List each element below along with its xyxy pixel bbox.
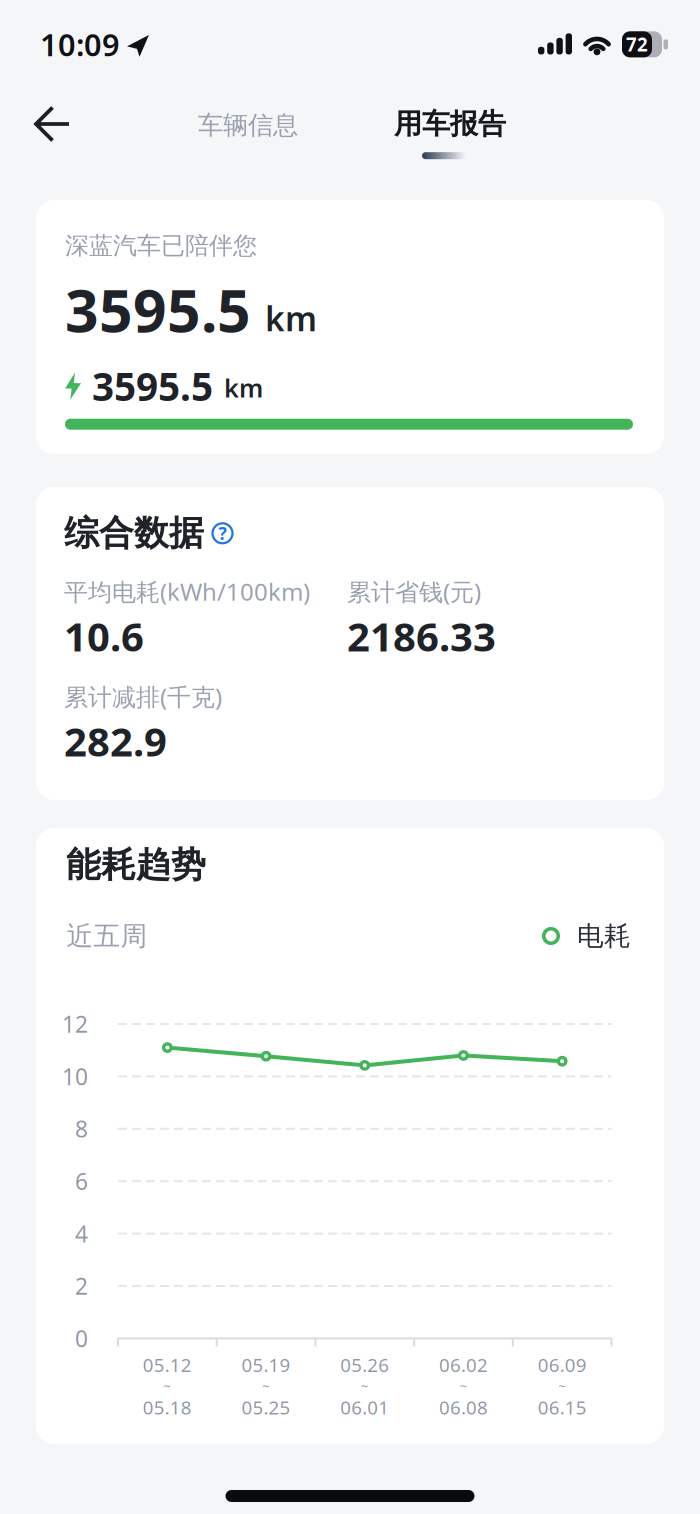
staticText: 10	[62, 1061, 88, 1091]
staticText: 近五周	[66, 920, 147, 952]
staticText: 深蓝汽车已陪伴您	[65, 231, 257, 260]
staticText: 72	[626, 32, 648, 57]
staticText: 8	[75, 1114, 88, 1144]
staticText: 282.9	[64, 714, 167, 767]
staticText: 6	[75, 1166, 88, 1196]
staticText: 累计省钱(元)	[347, 576, 481, 607]
button[interactable]: Back	[30, 102, 74, 146]
staticText: 3595.5	[65, 270, 251, 348]
staticText: ~	[163, 1377, 171, 1395]
staticText: 05.18	[143, 1395, 192, 1420]
staticText: 05.26	[340, 1352, 389, 1377]
staticText: 12	[62, 1009, 88, 1039]
staticText: 0	[75, 1323, 88, 1353]
staticText: 06.01	[340, 1395, 389, 1420]
staticText: 10.6	[64, 609, 144, 663]
staticText: 综合数据	[64, 512, 204, 555]
button[interactable]: 用车报告	[394, 107, 506, 159]
staticText: 累计减排(千克)	[64, 681, 222, 712]
staticText: ~	[459, 1377, 467, 1395]
staticText: 05.25	[242, 1395, 291, 1420]
button[interactable]: 车辆信息	[198, 107, 298, 141]
staticText: 2	[75, 1271, 88, 1301]
staticText: 06.15	[538, 1395, 587, 1420]
staticText: 06.09	[538, 1352, 587, 1377]
staticText: ~	[361, 1377, 369, 1395]
staticText: ?	[218, 522, 226, 545]
staticText: 10:09	[40, 24, 120, 65]
staticText: 06.08	[439, 1395, 488, 1420]
staticText: 05.12	[143, 1352, 192, 1377]
staticText: 车辆信息	[198, 110, 298, 141]
staticText: 4	[75, 1218, 88, 1249]
staticText: 平均电耗(kWh/100km)	[64, 576, 310, 607]
staticText: 05.19	[242, 1352, 291, 1377]
staticText: km	[224, 371, 263, 404]
staticText: 能耗趋势	[66, 844, 206, 886]
staticText: 2186.33	[347, 609, 496, 663]
staticText: 电耗	[577, 920, 631, 952]
staticText: 06.02	[439, 1352, 488, 1377]
staticText: ~	[558, 1377, 566, 1395]
staticText: 3595.5	[92, 360, 213, 412]
button[interactable]: 说明	[212, 523, 233, 544]
staticText: 用车报告	[394, 107, 506, 141]
staticText: km	[265, 296, 317, 340]
staticText: ~	[262, 1377, 270, 1395]
